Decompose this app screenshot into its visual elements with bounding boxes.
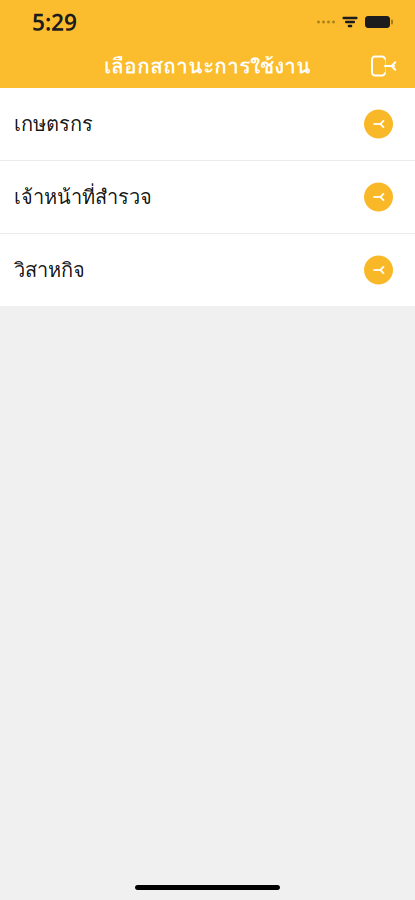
button[interactable]: วิสาหกิจ <box>0 234 415 306</box>
staticText: วิสาหกิจ <box>14 254 85 285</box>
staticText: เลือกสถานะการใช้งาน <box>104 49 311 83</box>
staticText: 5:29 <box>32 7 77 37</box>
button[interactable]: เกษตรกร <box>0 88 415 160</box>
button[interactable]: เจ้าหน้าที่สำรวจ <box>0 161 415 233</box>
staticText: เจ้าหน้าที่สำรวจ <box>14 181 152 212</box>
staticText: เกษตรกร <box>14 108 93 139</box>
button[interactable]: Log out <box>363 44 407 88</box>
